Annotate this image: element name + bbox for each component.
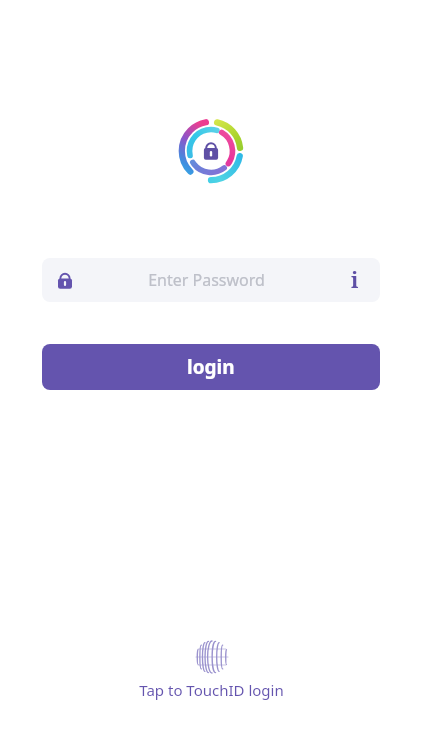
- button[interactable]: login: [42, 344, 380, 390]
- staticText: Tap to TouchID login: [139, 680, 284, 700]
- button[interactable]: Password info: [338, 263, 372, 297]
- other: Tap to TouchID login: [196, 641, 228, 673]
- staticText: Enter Password: [75, 269, 338, 291]
- other: Password: [55, 270, 75, 290]
- staticText: login: [187, 354, 235, 380]
- button[interactable]: Tap to TouchID login: [115, 637, 308, 704]
- staticText: i: [351, 266, 359, 295]
- button[interactable]: Password: [42, 258, 380, 302]
